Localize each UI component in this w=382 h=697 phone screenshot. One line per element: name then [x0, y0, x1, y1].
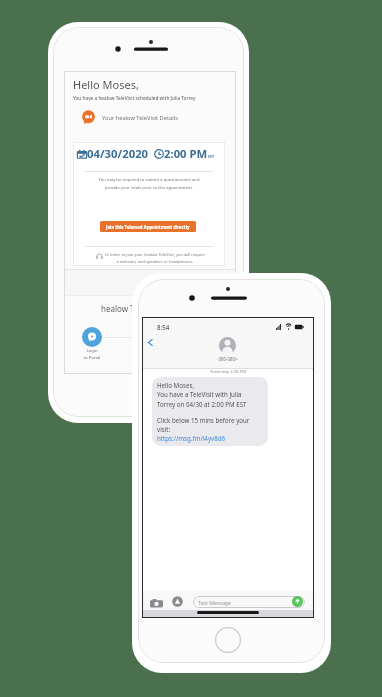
staticText: 04/30/2020 [87, 146, 149, 161]
staticText: 2:00 PM [164, 146, 208, 161]
staticText: Hello Moses, You have a TeleVisit with J… [157, 381, 247, 409]
staticText: https://msg.fm/i4yv8d6 [157, 434, 226, 442]
staticText: healow TeleVisit [101, 303, 161, 314]
staticText: EST [208, 154, 215, 159]
staticText: In order to join your healow TeleVisit, … [79, 252, 231, 264]
staticText: Yesterday 2:38 PM [142, 369, 314, 375]
staticText: Click below 15 mins before your visit: [157, 416, 250, 434]
staticText: Join this Telemed Appointment directly [106, 224, 190, 230]
button[interactable]: Login to Portal [82, 327, 102, 347]
staticText: 080-080> [213, 356, 243, 362]
button[interactable]: Send [292, 596, 303, 607]
staticText: You have a healow TeleVisit scheduled wi… [73, 95, 196, 101]
staticText: You may be required to submit a question… [73, 177, 225, 190]
staticText: Your healow TeleVisit Details [102, 114, 178, 122]
button[interactable]: Apps [172, 596, 183, 607]
button[interactable]: Camera [149, 595, 164, 608]
staticText: Hello Moses, [73, 77, 139, 92]
button[interactable]: Join this Telemed Appointment directly [100, 221, 196, 232]
staticText: Text Message [198, 599, 231, 606]
staticText: Login to Portal [77, 348, 107, 360]
button[interactable]: Text Message [193, 596, 305, 608]
button[interactable]: Back [145, 337, 156, 348]
staticText: 8:54 [157, 323, 170, 331]
